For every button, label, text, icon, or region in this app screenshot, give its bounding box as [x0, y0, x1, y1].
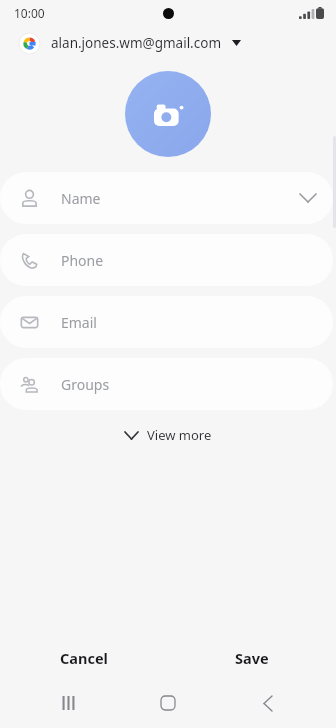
- button[interactable]: Save: [168, 636, 336, 680]
- staticText: Save: [235, 648, 269, 668]
- button[interactable]: Back: [236, 684, 300, 722]
- staticText: View more: [147, 426, 212, 444]
- staticText: Groups: [61, 375, 110, 394]
- staticText: Phone: [61, 251, 104, 270]
- button[interactable]: View more: [111, 417, 226, 453]
- button[interactable]: Add photo: [125, 71, 211, 157]
- button[interactable]: Groups: [0, 358, 333, 410]
- button[interactable]: Recent apps: [36, 684, 100, 722]
- staticText: alan.jones.wm@gmail.com: [51, 34, 222, 52]
- button[interactable]: Email: [0, 296, 333, 348]
- staticText: 10:00: [14, 5, 45, 21]
- staticText: Name: [61, 189, 101, 208]
- button[interactable]: Cancel: [0, 636, 168, 680]
- button[interactable]: Home: [136, 684, 200, 722]
- button[interactable]: Phone: [0, 234, 333, 286]
- staticText: Email: [61, 313, 97, 332]
- button[interactable]: alan.jones.wm@gmail.com: [0, 26, 336, 60]
- staticText: Cancel: [60, 648, 108, 668]
- button[interactable]: Name: [0, 172, 333, 224]
